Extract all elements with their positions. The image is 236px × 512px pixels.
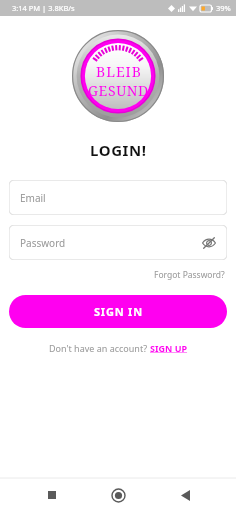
button[interactable]: SIGN UP xyxy=(150,342,188,354)
staticText: 39% xyxy=(216,3,231,13)
button[interactable]: Show password xyxy=(199,233,219,253)
button[interactable]: Forgot Password? xyxy=(152,267,227,283)
staticText: SIGN UP xyxy=(150,342,188,354)
staticText: LOGIN! xyxy=(90,140,147,160)
staticText: GESUND xyxy=(88,81,149,100)
staticText: BLEIB xyxy=(96,62,142,81)
staticText: Password xyxy=(20,236,66,250)
button[interactable]: Home xyxy=(103,480,133,510)
staticText: Don't have an account? xyxy=(49,342,150,354)
button[interactable]: Back xyxy=(170,480,200,510)
staticText: Forgot Password? xyxy=(154,269,225,281)
staticText: 3:14 PM | 3.8KB/s xyxy=(12,3,75,13)
button[interactable]: SIGN IN xyxy=(9,295,227,328)
button[interactable]: Recents xyxy=(37,480,67,510)
button[interactable]: Password xyxy=(9,225,227,260)
button[interactable]: Email xyxy=(9,180,227,215)
staticText: SIGN IN xyxy=(94,304,143,319)
staticText: Email xyxy=(20,191,46,205)
